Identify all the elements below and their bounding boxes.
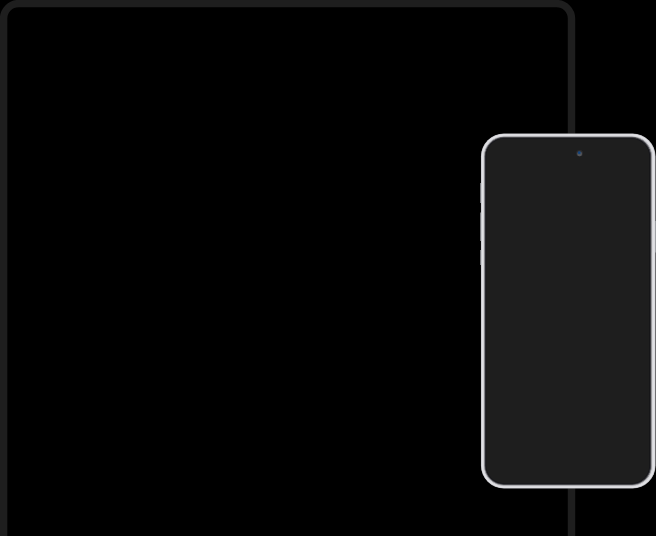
button[interactable]: Tablet preview — [0, 0, 576, 536]
button[interactable]: Phone preview — [481, 133, 656, 488]
